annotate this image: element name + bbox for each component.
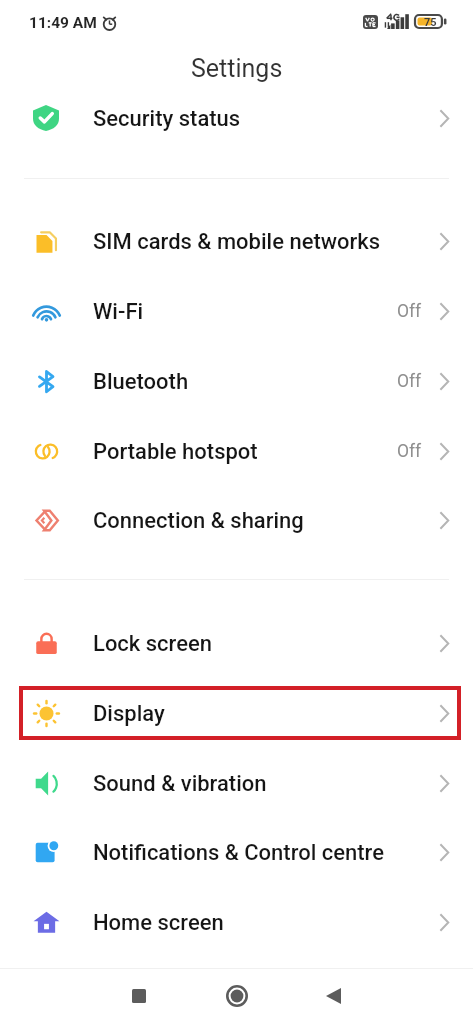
button[interactable]: Bluetooth <box>0 346 473 416</box>
button[interactable]: Connection & sharing <box>0 485 473 555</box>
staticText: 75 <box>424 16 437 29</box>
staticText: Off <box>397 301 422 322</box>
staticText: Settings <box>191 54 283 83</box>
button[interactable]: Display <box>0 678 473 748</box>
button[interactable]: Home <box>188 969 285 1024</box>
button[interactable]: Notifications & Control centre <box>0 817 473 887</box>
button[interactable]: SIM cards & mobile networks <box>0 206 473 276</box>
staticText: Display <box>93 701 165 727</box>
staticText: Security status <box>93 106 241 132</box>
button[interactable]: Back <box>285 969 382 1024</box>
button[interactable]: Security status <box>0 83 473 153</box>
button[interactable]: Portable hotspot <box>0 416 473 486</box>
staticText: SIM cards & mobile networks <box>93 229 381 255</box>
button[interactable]: Wi-Fi <box>0 276 473 346</box>
staticText: Home screen <box>93 910 224 936</box>
button[interactable]: Lock screen <box>0 608 473 678</box>
button[interactable]: Recents <box>90 969 187 1024</box>
staticText: Wi-Fi <box>93 299 144 325</box>
button[interactable]: Home screen <box>0 887 473 957</box>
staticText: Off <box>397 371 422 392</box>
staticText: Portable hotspot <box>93 439 258 465</box>
button[interactable]: Sound & vibration <box>0 748 473 818</box>
staticText: Lock screen <box>93 631 212 657</box>
staticText: Sound & vibration <box>93 771 267 797</box>
staticText: 11:49 AM <box>29 14 97 32</box>
staticText: Bluetooth <box>93 369 189 395</box>
staticText: Notifications & Control centre <box>93 840 384 866</box>
staticText: Off <box>397 441 422 462</box>
staticText: Connection & sharing <box>93 508 304 534</box>
